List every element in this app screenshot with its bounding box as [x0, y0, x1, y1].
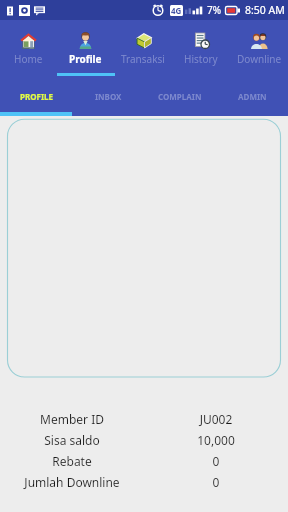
staticText: Jumlah Downline	[0, 474, 144, 490]
staticText: 4G	[171, 5, 182, 16]
staticText: History	[184, 52, 218, 66]
staticText: Downline	[237, 52, 282, 66]
button[interactable]: ADMIN	[216, 76, 288, 116]
staticText: 8:50 AM	[245, 3, 285, 17]
staticText: Sisa saldo	[0, 432, 144, 448]
staticText: Profile	[69, 52, 102, 66]
staticText: 10,000	[144, 432, 288, 448]
button[interactable]: Downline	[230, 20, 288, 76]
button[interactable]: Home	[0, 20, 57, 76]
button[interactable]: INBOX	[72, 76, 144, 116]
staticText: 0	[144, 453, 288, 469]
staticText: PROFILE	[20, 91, 53, 102]
staticText: JU002	[144, 411, 288, 427]
staticText: Rebate	[0, 453, 144, 469]
staticText: 0	[144, 474, 288, 490]
button[interactable]: Transaksi	[114, 20, 172, 76]
button[interactable]: History	[172, 20, 230, 76]
staticText: COMPLAIN	[158, 91, 202, 102]
staticText: Transaksi	[121, 52, 165, 66]
staticText: 7%	[207, 3, 222, 17]
staticText: Home	[14, 52, 43, 66]
staticText: INBOX	[95, 91, 122, 102]
button[interactable]: PROFILE	[0, 76, 72, 116]
button[interactable]: Profile	[57, 20, 114, 76]
staticText: Member ID	[0, 411, 144, 427]
button[interactable]: COMPLAIN	[144, 76, 216, 116]
staticText: ADMIN	[238, 91, 267, 102]
